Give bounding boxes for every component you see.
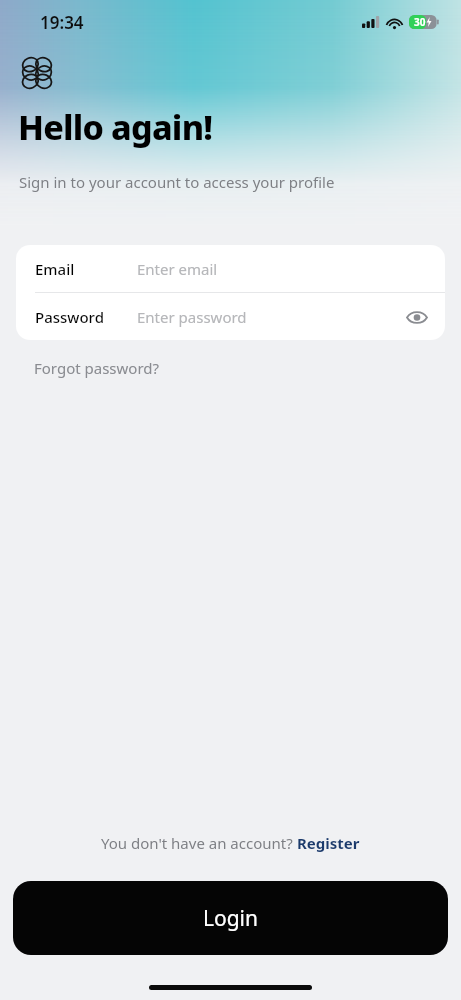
staticText: Hello again!: [18, 104, 213, 150]
button[interactable]: Show password: [403, 303, 431, 331]
staticText: Sign in to your account to access your p…: [19, 172, 335, 192]
staticText: Email: [35, 259, 75, 279]
button[interactable]: Password: [16, 293, 445, 340]
button[interactable]: Login: [13, 881, 448, 955]
staticText: Register: [297, 833, 360, 853]
staticText: Login: [203, 904, 259, 933]
button[interactable]: Register: [297, 833, 360, 853]
staticText: Enter password: [137, 307, 403, 327]
staticText: 19:34: [40, 11, 84, 34]
staticText: Forgot password?: [34, 358, 160, 378]
button[interactable]: Forgot password?: [30, 354, 164, 382]
staticText: Password: [35, 307, 104, 327]
staticText: 30: [414, 15, 426, 29]
staticText: You don't have an account?: [101, 833, 297, 853]
button[interactable]: Email: [16, 245, 445, 292]
other: App logo: [20, 56, 54, 90]
staticText: Enter email: [137, 259, 431, 279]
